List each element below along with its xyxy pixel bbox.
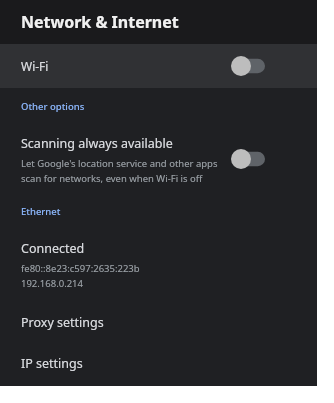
staticText: Ethernet bbox=[21, 205, 61, 218]
button[interactable]: Toggle switch, off bbox=[231, 56, 265, 76]
button[interactable]: IP settings bbox=[0, 344, 317, 382]
staticText: Network & Internet bbox=[21, 11, 179, 33]
staticText: Other options bbox=[21, 100, 85, 113]
staticText: Wi-Fi bbox=[21, 58, 49, 74]
staticText: Proxy settings bbox=[21, 314, 104, 331]
staticText: Let Google's location service and other … bbox=[21, 157, 218, 170]
button[interactable]: Proxy settings bbox=[0, 303, 317, 341]
button[interactable]: Toggle switch, off bbox=[231, 149, 265, 169]
staticText: Scanning always available bbox=[21, 135, 173, 152]
staticText: fe80::8e23:c597:2635:223b bbox=[21, 262, 140, 275]
staticText: IP settings bbox=[21, 355, 83, 372]
staticText: 192.168.0.214 bbox=[21, 277, 83, 288]
staticText: scan for networks, even when Wi-Fi is of… bbox=[21, 172, 203, 185]
button[interactable]: Scanning always available bbox=[0, 128, 317, 186]
staticText: Connected bbox=[21, 240, 85, 257]
button[interactable]: Connected bbox=[0, 236, 317, 288]
button[interactable]: Wi-Fi bbox=[0, 44, 317, 88]
